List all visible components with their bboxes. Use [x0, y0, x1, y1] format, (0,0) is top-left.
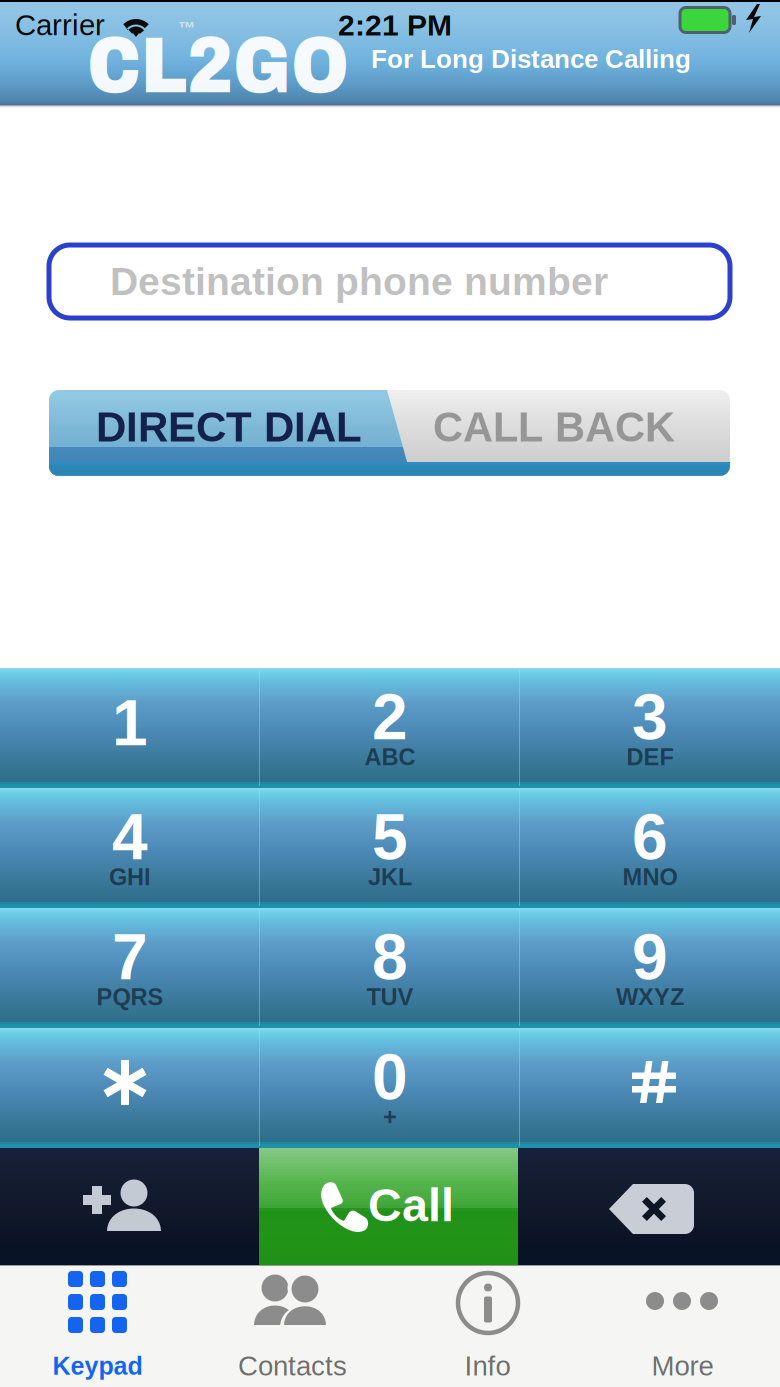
staticText: MNO: [622, 864, 677, 890]
staticText: 2: [372, 681, 408, 753]
staticText: Info: [464, 1351, 510, 1381]
staticText: Call: [368, 1179, 454, 1231]
staticText: CL2GO: [87, 23, 349, 109]
staticText: WXYZ: [616, 984, 684, 1010]
staticText: 2:21 PM: [338, 8, 452, 42]
staticText: 0: [372, 1041, 408, 1113]
staticText: 9: [632, 921, 668, 993]
button[interactable]: Delete: [518, 1148, 780, 1265]
staticText: GHI: [109, 864, 151, 890]
button[interactable]: Keypad: [0, 1265, 195, 1387]
staticText: 6: [632, 801, 668, 873]
staticText: ™: [178, 18, 195, 38]
staticText: 4: [112, 801, 148, 873]
staticText: 5: [372, 801, 408, 873]
staticText: 1: [112, 687, 148, 759]
staticText: Contacts: [238, 1351, 347, 1381]
button[interactable]: Destination phone number: [49, 245, 730, 318]
button[interactable]: 0: [260, 1028, 520, 1148]
staticText: +: [383, 1104, 397, 1130]
button[interactable]: 3: [520, 668, 780, 788]
staticText: DIRECT DIAL: [96, 403, 362, 450]
button[interactable]: 6: [520, 788, 780, 908]
staticText: More: [651, 1351, 713, 1381]
staticText: ABC: [364, 744, 415, 770]
staticText: 8: [372, 921, 408, 993]
button[interactable]: Info: [390, 1265, 585, 1387]
staticText: TUV: [366, 984, 413, 1010]
staticText: PQRS: [96, 984, 163, 1010]
button[interactable]: Contacts: [195, 1265, 390, 1387]
staticText: Carrier: [15, 9, 105, 41]
button[interactable]: 1: [0, 668, 260, 788]
staticText: CALL BACK: [433, 404, 675, 450]
button[interactable]: More: [585, 1265, 780, 1387]
button[interactable]: 4: [0, 788, 260, 908]
staticText: JKL: [368, 864, 412, 890]
button[interactable]: Pound: [520, 1028, 780, 1148]
button[interactable]: Star: [0, 1028, 260, 1148]
button[interactable]: 9: [520, 908, 780, 1028]
button[interactable]: Call: [259, 1148, 518, 1265]
staticText: 7: [112, 921, 148, 993]
button[interactable]: 2: [260, 668, 520, 788]
button[interactable]: 8: [260, 908, 520, 1028]
button[interactable]: 5: [260, 788, 520, 908]
staticText: For Long Distance Calling: [371, 44, 691, 73]
staticText: 3: [632, 681, 668, 753]
button[interactable]: Add contact: [0, 1148, 259, 1265]
staticText: Destination phone number: [110, 260, 608, 303]
staticText: Keypad: [52, 1352, 142, 1380]
button[interactable]: 7: [0, 908, 260, 1028]
staticText: DEF: [626, 744, 673, 770]
